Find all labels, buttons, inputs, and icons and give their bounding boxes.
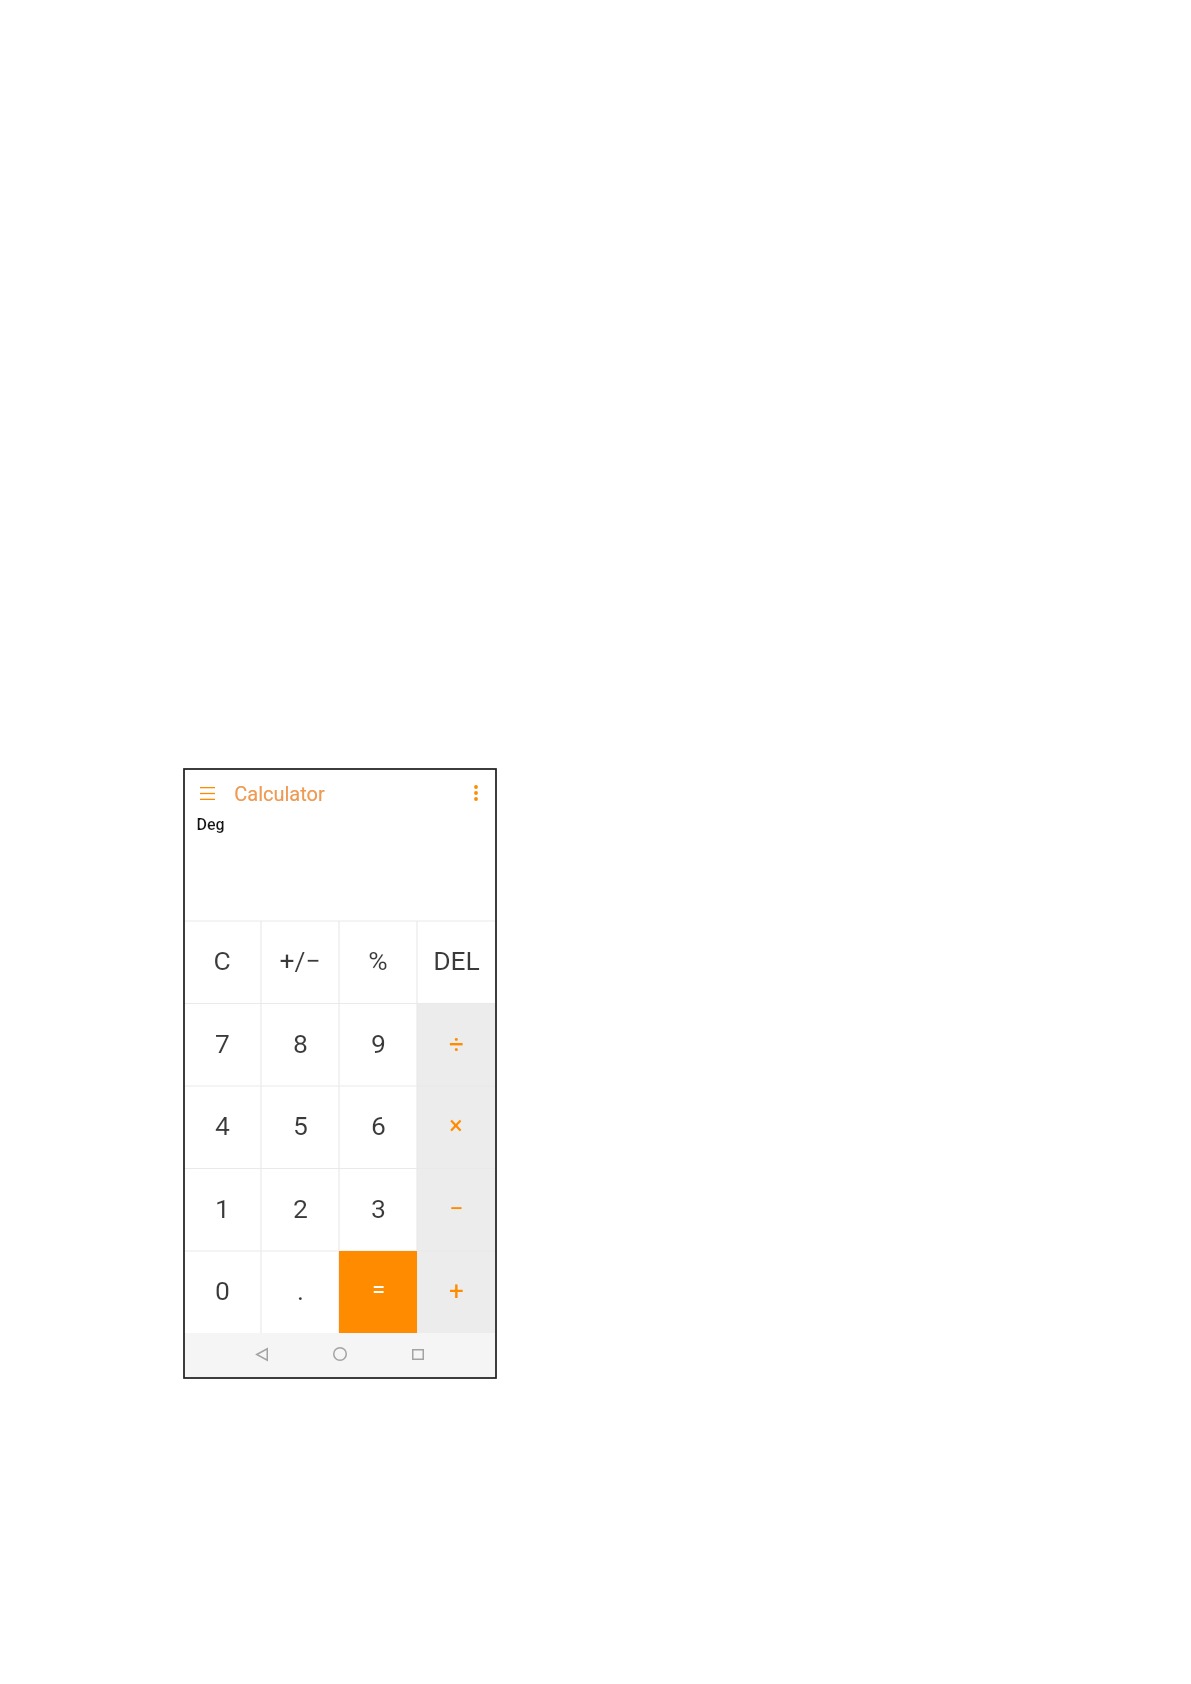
button[interactable]: DEL (417, 921, 495, 1004)
staticText: 0 (215, 1275, 230, 1306)
staticText: . (297, 1275, 304, 1306)
button[interactable]: 5 (261, 1086, 339, 1169)
staticText: 4 (215, 1110, 230, 1141)
button[interactable]: +/− (261, 921, 339, 1004)
staticText: % (368, 945, 388, 976)
staticText: = (372, 1277, 385, 1304)
button[interactable]: × (417, 1086, 495, 1169)
staticText: + (449, 1276, 464, 1306)
staticText: − (449, 1194, 464, 1223)
staticText: 8 (293, 1028, 308, 1059)
staticText: ÷ (449, 1029, 464, 1059)
button[interactable]: 6 (339, 1086, 417, 1169)
button[interactable]: 8 (261, 1004, 339, 1087)
button[interactable]: C (183, 921, 261, 1004)
button[interactable]: 9 (339, 1004, 417, 1087)
staticText: 9 (371, 1028, 386, 1059)
button[interactable]: Recent apps (401, 1337, 435, 1371)
staticText: Deg (196, 815, 225, 834)
staticText: 3 (371, 1193, 386, 1224)
staticText: +/− (279, 945, 321, 976)
button[interactable]: . (261, 1251, 339, 1334)
staticText: C (213, 945, 231, 976)
staticText: 6 (371, 1110, 386, 1141)
staticText: DEL (433, 945, 480, 976)
button[interactable]: 0 (183, 1251, 261, 1334)
button[interactable]: 7 (183, 1004, 261, 1087)
button[interactable]: 1 (183, 1169, 261, 1252)
button[interactable]: 2 (261, 1169, 339, 1252)
button[interactable]: = (339, 1251, 417, 1334)
button[interactable]: 4 (183, 1086, 261, 1169)
button[interactable]: % (339, 921, 417, 1004)
button[interactable]: Back (245, 1337, 279, 1371)
button[interactable]: Home (323, 1337, 357, 1371)
button[interactable]: 3 (339, 1169, 417, 1252)
staticText: 5 (293, 1110, 308, 1141)
staticText: 2 (293, 1193, 308, 1224)
button[interactable]: ÷ (417, 1004, 495, 1087)
button[interactable]: Deg (184, 815, 496, 921)
staticText: Calculator (234, 782, 325, 805)
button[interactable]: − (417, 1169, 495, 1252)
button[interactable]: More options (464, 780, 488, 806)
button[interactable]: + (417, 1251, 495, 1334)
staticText: 1 (215, 1193, 230, 1224)
staticText: × (449, 1111, 463, 1140)
staticText: 7 (215, 1028, 230, 1059)
button[interactable]: Open navigation menu (190, 776, 224, 810)
